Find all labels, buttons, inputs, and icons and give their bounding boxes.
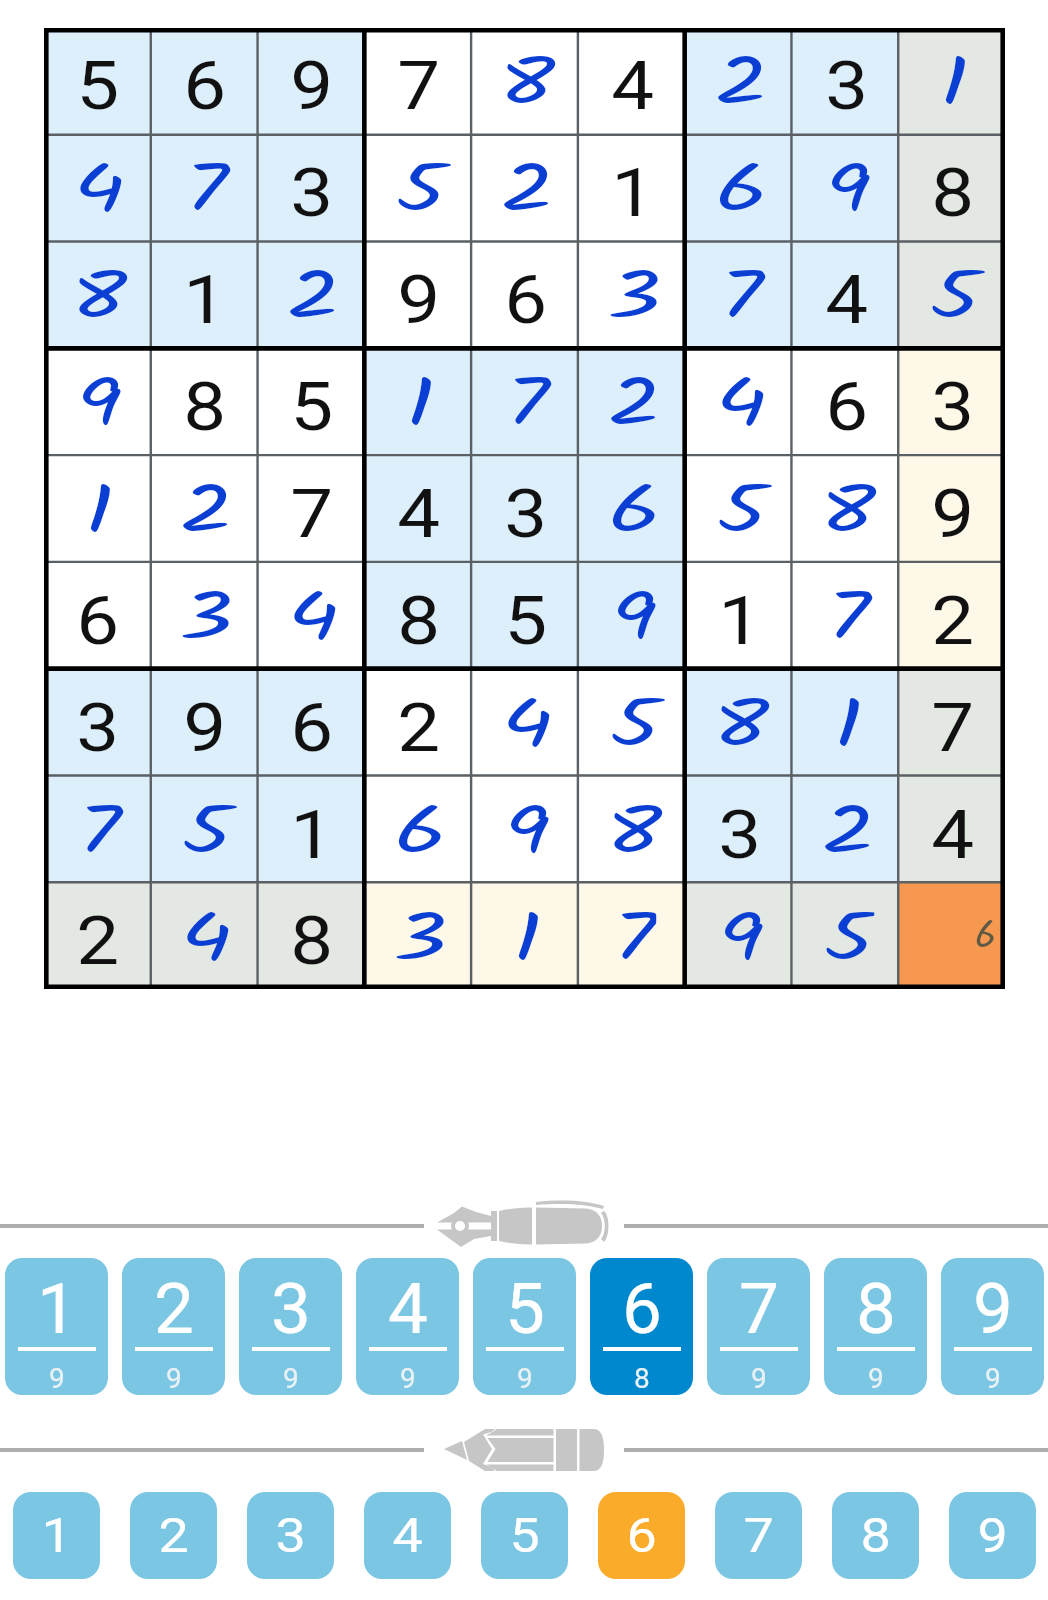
button[interactable]: 8	[824, 1258, 927, 1395]
button[interactable]: Cell row 1 column 5	[472, 28, 579, 135]
button[interactable]: Cell row 7 column 4	[365, 670, 472, 777]
button[interactable]: Pencil notes mode	[0, 1410, 1048, 1490]
button[interactable]: Cell row 5 column 2	[151, 456, 258, 563]
button[interactable]: Cell row 7 column 3	[258, 670, 365, 777]
button[interactable]: Cell row 9 column 9	[900, 884, 1005, 989]
button[interactable]: Cell row 8 column 9	[900, 777, 1005, 884]
button[interactable]: Cell row 3 column 7	[686, 242, 793, 349]
button[interactable]: Cell row 2 column 3	[258, 135, 365, 242]
button[interactable]: Cell row 3 column 8	[793, 242, 900, 349]
button[interactable]: Cell row 6 column 1	[44, 563, 151, 670]
button[interactable]: Cell row 9 column 4	[365, 884, 472, 989]
button[interactable]: 5	[481, 1492, 568, 1579]
button[interactable]: Cell row 1 column 6	[579, 28, 686, 135]
button[interactable]: Cell row 9 column 2	[151, 884, 258, 989]
button[interactable]: 8	[832, 1492, 919, 1579]
button[interactable]: Cell row 7 column 8	[793, 670, 900, 777]
button[interactable]: Cell row 9 column 8	[793, 884, 900, 989]
button[interactable]: Cell row 4 column 9	[900, 349, 1005, 456]
button[interactable]: Cell row 9 column 7	[686, 884, 793, 989]
button[interactable]: Cell row 5 column 7	[686, 456, 793, 563]
button[interactable]: 6	[590, 1258, 693, 1395]
button[interactable]: Cell row 3 column 2	[151, 242, 258, 349]
button[interactable]: Cell row 4 column 3	[258, 349, 365, 456]
button[interactable]: Cell row 5 column 4	[365, 456, 472, 563]
button[interactable]: Cell row 7 column 1	[44, 670, 151, 777]
button[interactable]: Cell row 2 column 4	[365, 135, 472, 242]
button[interactable]: 2	[130, 1492, 217, 1579]
button[interactable]: Cell row 6 column 5	[472, 563, 579, 670]
button[interactable]: Cell row 2 column 9	[900, 135, 1005, 242]
button[interactable]: Cell row 3 column 9	[900, 242, 1005, 349]
button[interactable]: Cell row 6 column 9	[900, 563, 1005, 670]
button[interactable]: 4	[364, 1492, 451, 1579]
button[interactable]: Cell row 5 column 9	[900, 456, 1005, 563]
button[interactable]: 3	[239, 1258, 342, 1395]
button[interactable]: Cell row 2 column 6	[579, 135, 686, 242]
button[interactable]: 6	[598, 1492, 685, 1579]
button[interactable]: Pen mode	[0, 1186, 1048, 1266]
button[interactable]: Cell row 2 column 7	[686, 135, 793, 242]
button[interactable]: Cell row 8 column 8	[793, 777, 900, 884]
button[interactable]: Cell row 4 column 1	[44, 349, 151, 456]
button[interactable]: Cell row 6 column 4	[365, 563, 472, 670]
button[interactable]: Cell row 1 column 2	[151, 28, 258, 135]
button[interactable]: Cell row 5 column 8	[793, 456, 900, 563]
button[interactable]: Cell row 6 column 7	[686, 563, 793, 670]
button[interactable]: Cell row 7 column 7	[686, 670, 793, 777]
button[interactable]: Cell row 3 column 3	[258, 242, 365, 349]
button[interactable]: Cell row 9 column 1	[44, 884, 151, 989]
button[interactable]: 3	[247, 1492, 334, 1579]
button[interactable]: Cell row 5 column 5	[472, 456, 579, 563]
button[interactable]: Cell row 1 column 1	[44, 28, 151, 135]
button[interactable]: Cell row 9 column 6	[579, 884, 686, 989]
button[interactable]: Cell row 4 column 5	[472, 349, 579, 456]
button[interactable]: 1	[13, 1492, 100, 1579]
button[interactable]: 9	[949, 1492, 1036, 1579]
button[interactable]: 5	[473, 1258, 576, 1395]
button[interactable]: Cell row 8 column 3	[258, 777, 365, 884]
button[interactable]: 4	[356, 1258, 459, 1395]
button[interactable]: Cell row 2 column 8	[793, 135, 900, 242]
button[interactable]: Cell row 9 column 5	[472, 884, 579, 989]
button[interactable]: Cell row 3 column 4	[365, 242, 472, 349]
button[interactable]: Cell row 1 column 7	[686, 28, 793, 135]
button[interactable]: Cell row 2 column 1	[44, 135, 151, 242]
button[interactable]: Cell row 6 column 8	[793, 563, 900, 670]
button[interactable]: 7	[715, 1492, 802, 1579]
button[interactable]: Cell row 2 column 5	[472, 135, 579, 242]
button[interactable]: Cell row 1 column 4	[365, 28, 472, 135]
button[interactable]: Cell row 4 column 4	[365, 349, 472, 456]
button[interactable]: Cell row 6 column 3	[258, 563, 365, 670]
button[interactable]: Cell row 5 column 6	[579, 456, 686, 563]
button[interactable]: Cell row 8 column 6	[579, 777, 686, 884]
button[interactable]: Cell row 6 column 6	[579, 563, 686, 670]
button[interactable]: Cell row 8 column 4	[365, 777, 472, 884]
button[interactable]: Cell row 5 column 1	[44, 456, 151, 563]
button[interactable]: Cell row 2 column 2	[151, 135, 258, 242]
button[interactable]: Cell row 4 column 6	[579, 349, 686, 456]
button[interactable]: Cell row 8 column 7	[686, 777, 793, 884]
button[interactable]: Cell row 7 column 9	[900, 670, 1005, 777]
button[interactable]: Cell row 1 column 3	[258, 28, 365, 135]
button[interactable]: 2	[122, 1258, 225, 1395]
button[interactable]: Cell row 4 column 8	[793, 349, 900, 456]
button[interactable]: Cell row 8 column 5	[472, 777, 579, 884]
button[interactable]: Cell row 3 column 6	[579, 242, 686, 349]
button[interactable]: Cell row 7 column 6	[579, 670, 686, 777]
button[interactable]: Cell row 4 column 2	[151, 349, 258, 456]
button[interactable]: Cell row 1 column 8	[793, 28, 900, 135]
button[interactable]: 1	[5, 1258, 108, 1395]
button[interactable]: Cell row 3 column 1	[44, 242, 151, 349]
button[interactable]: Cell row 8 column 2	[151, 777, 258, 884]
button[interactable]: Cell row 8 column 1	[44, 777, 151, 884]
button[interactable]: Cell row 7 column 5	[472, 670, 579, 777]
button[interactable]: 7	[707, 1258, 810, 1395]
button[interactable]: Cell row 9 column 3	[258, 884, 365, 989]
button[interactable]: Cell row 1 column 9	[900, 28, 1005, 135]
button[interactable]: Cell row 5 column 3	[258, 456, 365, 563]
button[interactable]: Cell row 3 column 5	[472, 242, 579, 349]
button[interactable]: Cell row 6 column 2	[151, 563, 258, 670]
button[interactable]: 9	[941, 1258, 1044, 1395]
button[interactable]: Cell row 7 column 2	[151, 670, 258, 777]
